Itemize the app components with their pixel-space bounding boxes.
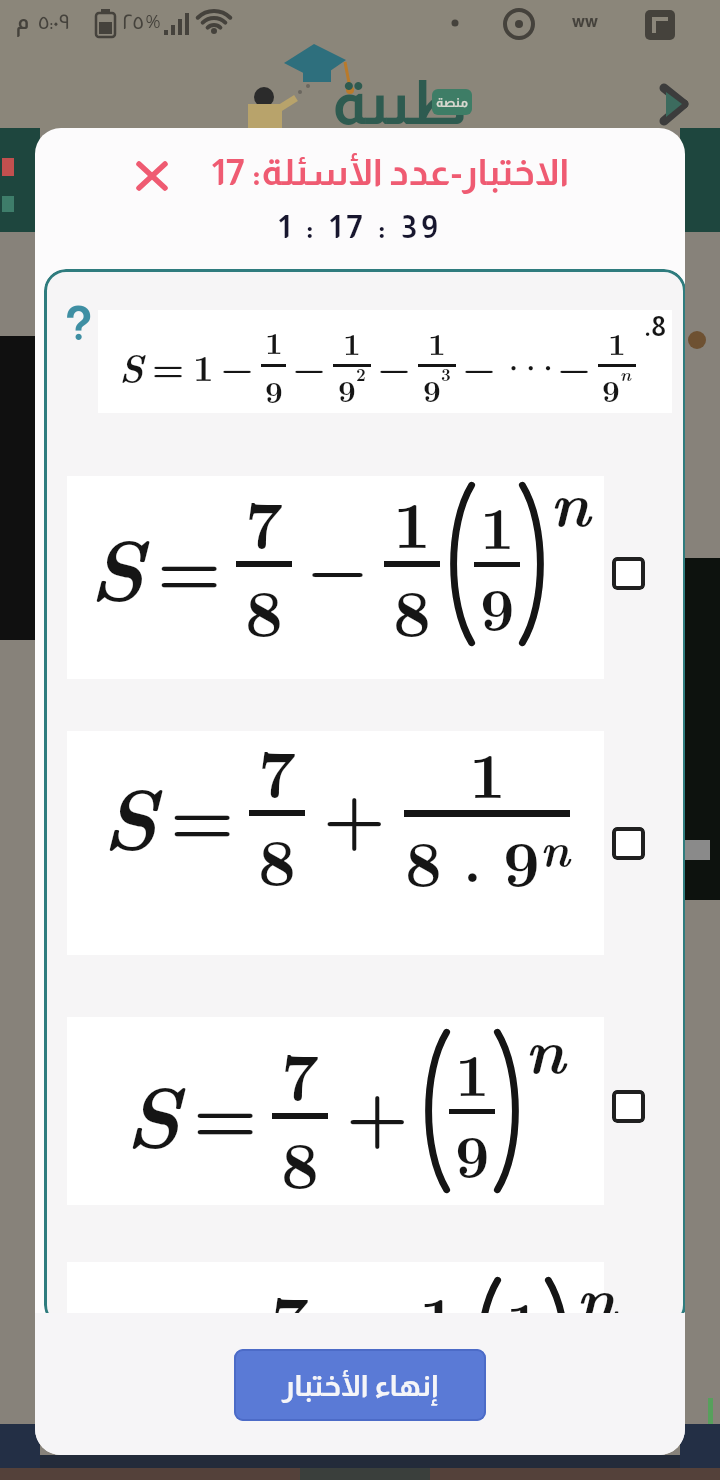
staticText: 9 <box>602 367 620 411</box>
staticText: 7 <box>258 722 296 816</box>
staticText: ٢٥ <box>122 10 144 33</box>
staticText: 8 <box>405 813 442 904</box>
staticText: n <box>576 1250 617 1327</box>
staticText: 9 <box>265 368 283 412</box>
staticText: ٥:٠٩ <box>38 10 70 33</box>
staticText: − <box>293 340 326 391</box>
staticText: − <box>308 517 368 611</box>
staticText: 7 <box>281 1025 319 1119</box>
staticText: − <box>221 340 254 391</box>
staticText: 8 <box>258 810 296 904</box>
staticText: S <box>115 1297 171 1327</box>
staticText: n <box>620 362 632 387</box>
staticText: ww <box>572 12 598 31</box>
staticText: 8 <box>393 561 431 655</box>
staticText: 1 <box>608 320 626 364</box>
button[interactable] <box>612 1090 645 1123</box>
staticText: − <box>463 340 496 391</box>
staticText: 1 <box>343 320 361 364</box>
staticText: 1 <box>469 725 506 816</box>
staticText: S <box>102 751 158 876</box>
staticText: طيبة <box>332 68 468 137</box>
staticText: = <box>152 340 185 391</box>
staticText: .8 <box>644 312 666 342</box>
staticText: n <box>550 455 591 545</box>
staticText: − <box>378 340 411 391</box>
staticText: % <box>146 11 161 32</box>
staticText: 1 <box>419 1268 457 1327</box>
button[interactable]: S <box>67 1017 604 1205</box>
staticText: 9 <box>455 1109 490 1195</box>
staticText: 3 <box>441 362 451 386</box>
staticText: 1 <box>506 1276 541 1327</box>
staticText: 7 <box>245 473 283 567</box>
staticText: الاختبار-عدد الأسئلة: 17 <box>211 152 570 193</box>
staticText: − <box>558 340 591 391</box>
button[interactable]: إنهاء الأختبار <box>234 1349 486 1421</box>
staticText: . <box>442 819 503 899</box>
staticText: S <box>119 338 144 393</box>
button[interactable] <box>129 152 175 198</box>
button[interactable] <box>650 75 698 131</box>
button[interactable]: S <box>67 731 604 955</box>
staticText: 9 <box>423 367 441 411</box>
staticText: 1 <box>455 1028 490 1114</box>
staticText: ··· <box>501 346 553 386</box>
staticText: 9 <box>338 367 356 411</box>
staticText: 1 <box>265 319 283 363</box>
staticText: م <box>16 10 30 33</box>
staticText: 1 <box>193 340 214 391</box>
staticText: 7 <box>271 1268 309 1327</box>
staticText: 1 <box>428 320 446 364</box>
button[interactable]: S <box>67 1262 604 1327</box>
staticText: 2 <box>356 362 366 386</box>
button[interactable]: S <box>67 476 604 679</box>
staticText: 8 <box>281 1113 319 1197</box>
staticText: 1 : 17 : 39 <box>278 209 443 245</box>
staticText: = <box>170 762 235 865</box>
staticText: + <box>346 1061 409 1161</box>
staticText: = <box>157 513 222 616</box>
staticText: 1 <box>393 473 431 567</box>
staticText: n <box>525 1002 566 1092</box>
staticText: n <box>540 813 570 880</box>
staticText: + <box>323 763 386 863</box>
staticText: إنهاء الأختبار <box>282 1369 438 1402</box>
staticText: = <box>183 1308 248 1327</box>
staticText: S <box>125 1049 181 1174</box>
staticText: = <box>193 1060 258 1163</box>
staticText: ? <box>64 297 93 351</box>
button[interactable] <box>612 557 645 590</box>
button[interactable]: .8 <box>98 310 672 413</box>
staticText: 9 <box>480 562 515 648</box>
staticText: منصة <box>436 95 469 110</box>
staticText: 8 <box>245 561 283 655</box>
staticText: 9 <box>503 813 540 904</box>
staticText: S <box>89 502 145 627</box>
button[interactable] <box>612 827 645 860</box>
staticText: 1 <box>480 481 515 567</box>
